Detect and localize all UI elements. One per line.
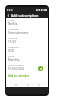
staticText: CURRENCY (8, 46, 20, 49)
staticText: Add to calendar (8, 74, 30, 78)
staticText: AMOUNT (8, 37, 18, 40)
staticText: 01/06/2024 (8, 67, 24, 71)
staticText: USD (8, 49, 15, 53)
button[interactable]: Save (38, 66, 43, 71)
staticText: Monthly (8, 58, 20, 62)
staticText: Add subscription (11, 13, 39, 18)
button[interactable]: CATEGORY (8, 27, 46, 36)
staticText: 15.99 (8, 40, 16, 44)
staticText: Netflix (8, 22, 18, 26)
staticText: CATEGORY (8, 28, 19, 31)
staticText: FIRST PAYMENT (8, 64, 25, 67)
button[interactable]: Back (13, 82, 18, 87)
button[interactable]: FIRST PAYMENT (8, 63, 46, 72)
staticText: NAME (8, 19, 15, 22)
staticText: CYCLE (8, 55, 15, 58)
button[interactable]: Back (6, 12, 11, 18)
button[interactable]: CURRENCY (8, 45, 46, 54)
button[interactable]: Recents (36, 82, 41, 87)
button[interactable]: NAME (8, 18, 46, 27)
staticText: Entertainment (8, 31, 29, 35)
button[interactable]: CYCLE (8, 54, 46, 63)
button[interactable]: AMOUNT (8, 36, 46, 45)
button[interactable]: Home (25, 82, 30, 87)
